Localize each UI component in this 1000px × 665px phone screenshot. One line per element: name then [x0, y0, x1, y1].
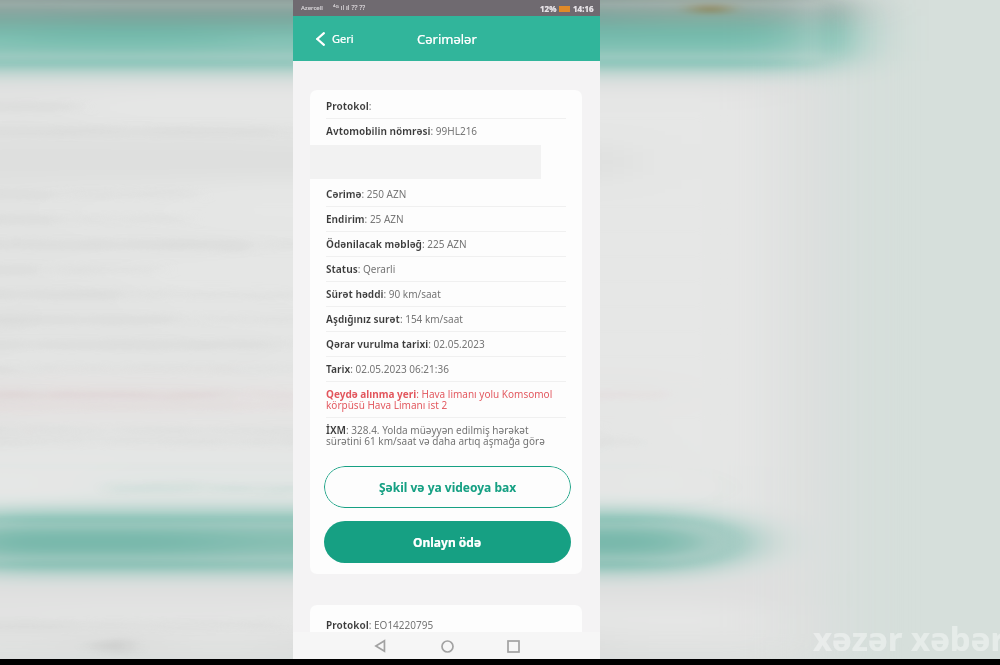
staticText: Qərar vurulma tarixi: 02.05.2023 — [326, 337, 485, 351]
staticText: Onlayn ödə — [217, 534, 441, 550]
button[interactable]: Home — [285, 633, 370, 659]
button[interactable]: Recent apps — [500, 633, 585, 659]
button[interactable]: Back — [293, 25, 362, 52]
button[interactable]: Back — [67, 633, 151, 659]
staticText: İXM: 328.4. Yolda müəyyən edilmiş hərəkə… — [0, 423, 715, 448]
button[interactable]: Back — [67, 633, 151, 659]
staticText: ⁴ᴳ ıl ıl ⁇ ⁇ — [0, 3, 63, 13]
staticText: Qərar vurulma tarixi: 02.05.2023 — [0, 337, 451, 351]
button[interactable]: Recent apps — [500, 633, 585, 659]
button[interactable]: Recent apps — [500, 633, 526, 659]
staticText: Aşdığınız surət: 154 km/saat — [326, 312, 463, 326]
staticText: 14:16 — [573, 3, 594, 14]
staticText: xəzər xəbər — [813, 616, 1000, 661]
button[interactable]: Onlayn ödə — [0, 521, 731, 563]
button[interactable]: Onlayn ödə — [324, 521, 571, 563]
staticText: Qeydə alınma yeri: Hava limanı yolu Koms… — [0, 387, 715, 412]
staticText: 14:16 — [738, 3, 806, 14]
staticText: Şəkil və ya videoya bax — [379, 479, 517, 495]
staticText: Sürət həddi: 90 km/saat — [0, 287, 308, 301]
staticText: Protokol: — [326, 99, 372, 113]
staticText: Aşdığınız surət: 154 km/saat — [0, 312, 379, 326]
staticText: 12% — [630, 3, 686, 14]
staticText: Avtomobilin nömrəsi: 99HL216 — [0, 124, 428, 138]
staticText: Tarix: 02.05.2023 06:21:36 — [326, 362, 449, 376]
staticText: İXM: 328.4. Yolda müəyyən edilmiş hərəkə… — [326, 423, 566, 448]
staticText: 12% — [540, 3, 557, 14]
button[interactable]: Home — [434, 633, 460, 659]
staticText: Status: Qerarli — [326, 262, 396, 276]
staticText: Sürət həddi: 90 km/saat — [0, 287, 308, 301]
staticText: Qeydə alınma yeri: Hava limanı yolu Koms… — [0, 387, 715, 412]
staticText: ⁴ᴳ ıl ıl ⁇ ⁇ — [333, 3, 366, 13]
staticText: Cərimələr — [417, 30, 477, 48]
staticText: Ödənilacak məbləğ: 225 AZN — [0, 237, 392, 251]
staticText: 12% — [630, 3, 686, 14]
staticText: Qərar vurulma tarixi: 02.05.2023 — [0, 337, 451, 351]
staticText: İXM: 328.4. Yolda müəyyən edilmiş hərəkə… — [0, 423, 715, 448]
staticText: Şəkil və ya videoya bax — [106, 479, 555, 495]
staticText: Onlayn ödə — [217, 534, 441, 550]
staticText: Cərimələr — [230, 30, 425, 48]
staticText: Tarix: 02.05.2023 06:21:36 — [0, 362, 334, 376]
staticText: Ödənilacak məbləğ: 225 AZN — [326, 237, 467, 251]
staticText: 14:16 — [738, 3, 806, 14]
staticText: Şəkil və ya videoya bax — [106, 479, 555, 495]
staticText: ⁴ᴳ ıl ıl ⁇ ⁇ — [0, 3, 63, 13]
button[interactable]: Şəkil və ya videoya bax — [0, 466, 731, 508]
button[interactable]: Onlayn ödə — [0, 521, 731, 563]
staticText: Geri — [332, 31, 354, 46]
staticText: Sürət həddi: 90 km/saat — [326, 287, 441, 301]
staticText: Aşdığınız surət: 154 km/saat — [0, 312, 379, 326]
staticText: Ödənilacak məbləğ: 225 AZN — [0, 237, 392, 251]
staticText: Endirim: 25 AZN — [326, 212, 404, 226]
staticText: Tarix: 02.05.2023 06:21:36 — [0, 362, 334, 376]
staticText: Qeydə alınma yeri: Hava limanı yolu Koms… — [326, 387, 566, 412]
staticText: Geri — [0, 31, 24, 46]
staticText: Onlayn ödə — [413, 534, 482, 550]
button[interactable]: Şəkil və ya videoya bax — [324, 466, 571, 508]
button[interactable]: Back — [0, 25, 50, 52]
staticText: Cərimə: 250 AZN — [326, 187, 407, 201]
button[interactable]: Back — [0, 25, 50, 52]
staticText: Geri — [0, 31, 24, 46]
button[interactable]: Home — [285, 633, 370, 659]
staticText: Avtomobilin nömrəsi: 99HL216 — [0, 124, 428, 138]
staticText: Avtomobilin nömrəsi: 99HL216 — [326, 124, 478, 138]
staticText: Azercell — [301, 4, 323, 12]
button[interactable]: Şəkil və ya videoya bax — [0, 466, 731, 508]
button[interactable]: Back — [367, 633, 393, 659]
staticText: Cərimələr — [230, 30, 425, 48]
staticText: Protokol: EO14220795 — [326, 618, 434, 632]
